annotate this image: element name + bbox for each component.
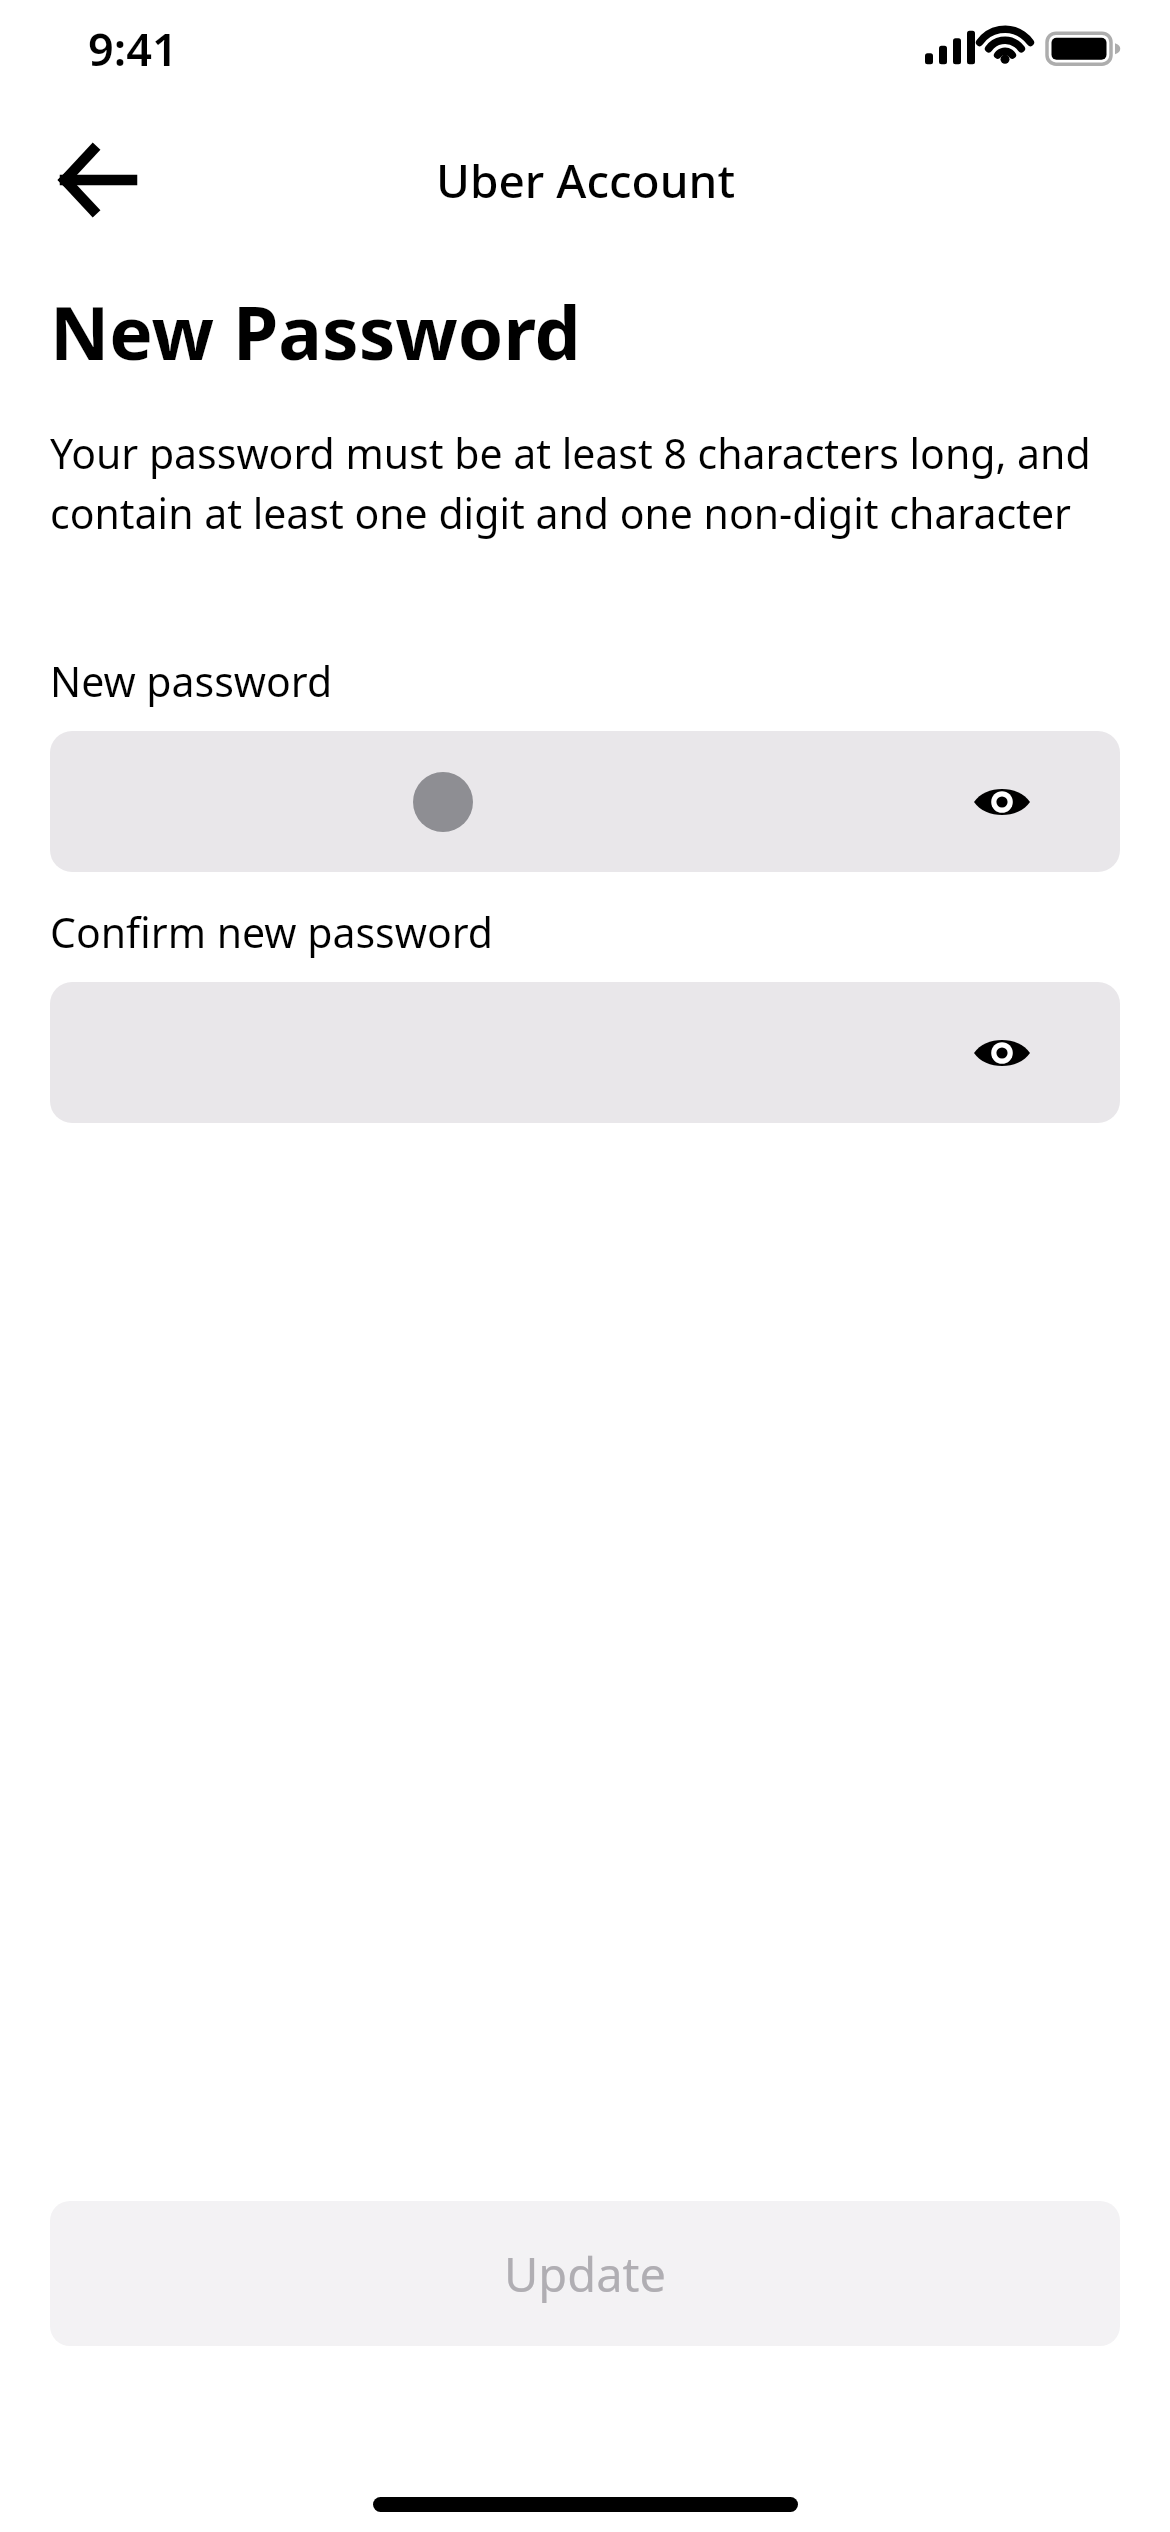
button[interactable]: Back <box>30 130 164 230</box>
staticText: New Password <box>50 282 581 381</box>
button[interactable]: Show password <box>954 754 1050 850</box>
staticText: Your password must be at least 8 charact… <box>50 425 1124 541</box>
staticText: New password <box>50 653 333 709</box>
button[interactable]: Show password <box>954 1005 1050 1101</box>
button[interactable]: Show password <box>50 731 1120 872</box>
staticText: Update <box>504 2242 667 2306</box>
staticText: Uber Account <box>436 149 735 212</box>
staticText: Confirm new password <box>50 904 494 960</box>
button[interactable]: Show password <box>50 982 1120 1123</box>
button[interactable]: Update <box>50 2201 1120 2346</box>
staticText: 9:41 <box>88 18 178 79</box>
